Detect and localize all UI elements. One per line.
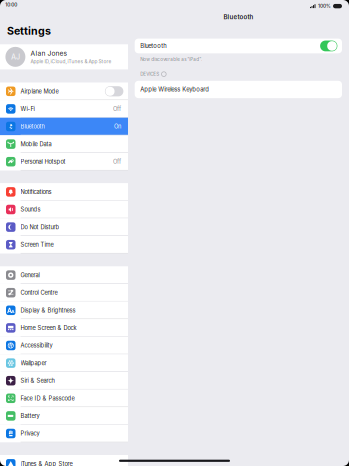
staticText: DEVICES [140,71,159,77]
button[interactable]: Sounds [0,201,128,218]
staticText: Off [113,105,121,112]
staticText: Wallpaper [21,360,47,366]
staticText: Face ID & Passcode [21,395,75,402]
staticText: On [114,123,121,130]
staticText: Sounds [21,206,41,213]
staticText: Siri & Search [21,377,55,384]
staticText: Apple ID, iCloud, iTunes & App Store [30,59,111,64]
button[interactable]: Mobile Data [0,135,128,153]
button[interactable]: Bluetooth toggle [320,40,337,51]
staticText: AJ [11,52,20,61]
staticText: Alan Jones [30,49,67,57]
staticText: iTunes & App Store [21,460,73,466]
staticText: Bluetooth [140,42,166,49]
staticText: 100% [318,3,331,9]
button[interactable]: Accessibility [0,337,128,354]
button[interactable]: Wi-Fi [0,100,128,118]
staticText: Wi-Fi [21,105,35,112]
staticText: Control Centre [21,289,58,296]
staticText: Display & Brightness [21,307,76,314]
button[interactable]: Bluetooth [0,118,128,135]
staticText: Privacy [21,430,40,437]
staticText: Now discoverable as “iPad”. [140,57,202,62]
staticText: Do Not Disturb [21,224,60,230]
button[interactable]: Face ID & Passcode [0,389,128,407]
staticText: 10:00 [5,2,17,8]
button[interactable]: Apple Wireless Keyboard [135,81,342,98]
button[interactable]: Personal Hotspot [0,153,128,170]
staticText: Airplane Mode [21,88,59,95]
staticText: Accessibility [21,342,53,349]
staticText: Screen Time [21,241,54,248]
button[interactable]: Airplane Mode [0,82,128,100]
staticText: Off [113,158,121,165]
button[interactable]: AJ [0,44,128,69]
button[interactable]: iTunes & App Store [0,455,128,466]
staticText: Bluetooth [21,123,45,130]
button[interactable]: Display & Brightness [0,301,128,319]
staticText: Apple Wireless Keyboard [140,86,209,93]
staticText: Home Screen & Dock [21,324,77,331]
button[interactable]: Siri & Search [0,372,128,389]
button[interactable]: Home Screen & Dock [0,319,128,337]
staticText: Mobile Data [21,141,52,147]
button[interactable]: Notifications [0,183,128,201]
staticText: Personal Hotspot [21,158,66,165]
button[interactable]: Do Not Disturb [0,218,128,236]
staticText: Settings [7,24,51,37]
staticText: Notifications [21,188,52,195]
button[interactable]: General [0,266,128,284]
button[interactable]: Wallpaper [0,354,128,372]
button[interactable]: Privacy [0,425,128,442]
staticText: Battery [21,412,40,419]
staticText: General [21,272,40,278]
button[interactable]: Control Centre [0,284,128,301]
button[interactable]: Screen Time [0,236,128,253]
button[interactable]: Battery [0,407,128,425]
staticText: Bluetooth [223,13,253,21]
